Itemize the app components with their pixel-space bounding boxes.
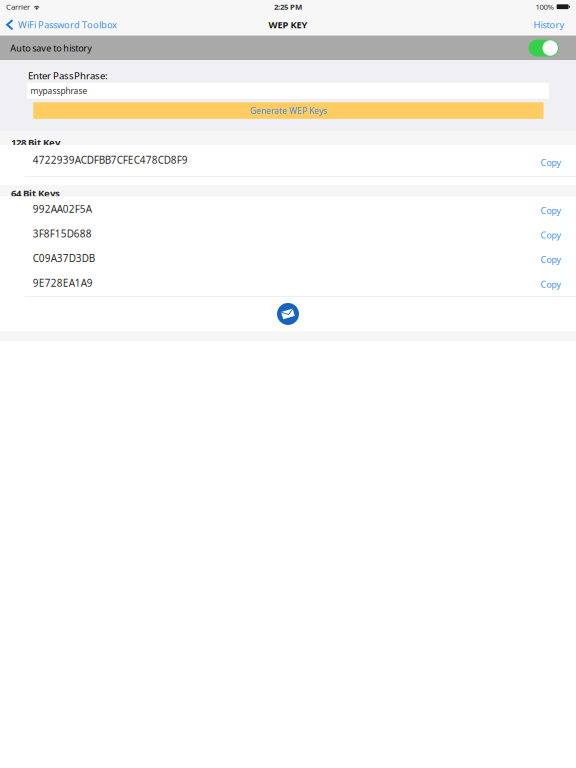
button[interactable]: Share keys by email <box>0 297 576 331</box>
button[interactable]: 9E728EA1A9 <box>0 272 576 296</box>
staticText: 9E728EA1A9 <box>33 276 93 289</box>
staticText: Copy <box>540 254 560 266</box>
button[interactable]: Copy <box>530 221 576 249</box>
staticText: Carrier <box>6 1 30 12</box>
staticText: 2:25 PM <box>274 1 302 12</box>
button[interactable]: Copy <box>530 145 576 178</box>
staticText: C09A37D3DB <box>33 251 95 265</box>
staticText: 4722939ACDFBB7CFEC478CD8F9 <box>33 153 188 166</box>
staticText: WEP KEY <box>268 18 307 31</box>
button[interactable]: Auto save to history <box>529 39 559 56</box>
staticText: 992AA02F5A <box>33 202 92 216</box>
staticText: Copy <box>540 204 560 216</box>
staticText: Auto save to history <box>10 42 92 54</box>
staticText: Enter PassPhrase: <box>28 69 108 82</box>
button[interactable]: WiFi Password Toolbox <box>0 14 123 36</box>
staticText: WiFi Password Toolbox <box>18 18 117 31</box>
button[interactable]: Copy <box>530 245 576 273</box>
staticText: Copy <box>540 157 560 169</box>
button[interactable]: Copy <box>530 270 576 298</box>
staticText: 100% <box>536 1 554 12</box>
staticText: History <box>533 18 564 31</box>
staticText: 3F8F15D688 <box>33 227 92 240</box>
button[interactable]: Generate WEP Keys <box>0 102 576 119</box>
button[interactable]: History <box>523 14 576 36</box>
staticText: Copy <box>540 229 560 241</box>
staticText: Generate WEP Keys <box>250 105 327 116</box>
staticText: Copy <box>540 278 560 290</box>
button[interactable]: 992AA02F5A <box>0 198 576 222</box>
staticText: 128 Bit Key <box>11 136 60 149</box>
button[interactable]: C09A37D3DB <box>0 247 576 271</box>
button[interactable]: 4722939ACDFBB7CFEC478CD8F9 <box>0 147 576 176</box>
button[interactable]: Copy <box>530 196 576 224</box>
staticText: mypassphrase <box>30 85 87 96</box>
button[interactable]: 3F8F15D688 <box>0 223 576 247</box>
staticText: 64 Bit Keys <box>11 186 60 199</box>
